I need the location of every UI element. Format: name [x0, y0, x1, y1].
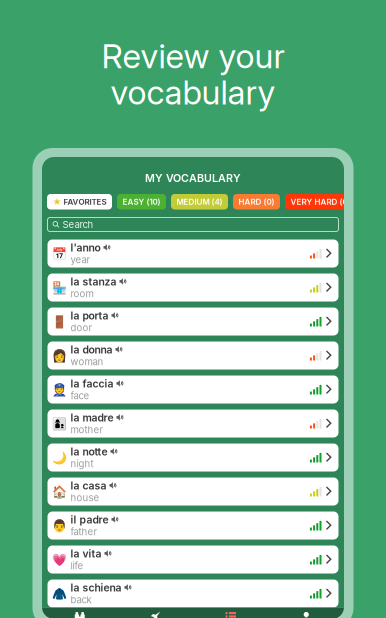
staticText: vocabulary — [110, 72, 275, 113]
button[interactable]: 🧥 — [47, 579, 338, 607]
staticText: 👨 — [52, 518, 67, 533]
staticText: Review your — [101, 36, 284, 76]
staticText: il padre — [70, 513, 108, 526]
staticText: 👩 — [52, 348, 67, 363]
button[interactable]: 🚪 — [47, 307, 338, 335]
staticText: MEDIUM (4) — [176, 197, 222, 207]
button[interactable]: MEDIUM (4) — [171, 194, 228, 209]
staticText: la schiena — [70, 581, 121, 594]
staticText: 🏠 — [52, 484, 67, 499]
staticText: VERY HARD (0) — [290, 197, 350, 207]
staticText: 🧥 — [52, 586, 67, 601]
button[interactable]: 👩 — [47, 341, 338, 369]
button[interactable]: Profile — [268, 611, 344, 618]
staticText: la notte — [70, 445, 107, 458]
staticText: year — [70, 254, 90, 266]
staticText: EASY (10) — [122, 197, 160, 207]
staticText: l'anno — [70, 241, 100, 254]
button[interactable]: Discover — [42, 611, 117, 618]
staticText: la donna — [70, 343, 112, 356]
button[interactable]: 💗 — [47, 545, 338, 573]
button[interactable]: Practice — [117, 611, 193, 618]
staticText: 👮 — [52, 382, 67, 397]
staticText: 📅 — [52, 246, 67, 261]
staticText: room — [70, 288, 93, 300]
staticText: ★ — [52, 196, 61, 207]
staticText: mother — [70, 424, 103, 436]
staticText: woman — [70, 356, 103, 368]
staticText: la vita — [70, 547, 101, 560]
button[interactable]: 🏠 — [47, 477, 338, 505]
staticText: house — [70, 492, 99, 504]
button[interactable]: 👨 — [47, 511, 338, 539]
button[interactable]: HARD (0) — [233, 194, 280, 209]
button[interactable]: 👩‍👦 — [47, 409, 338, 437]
staticText: HARD (0) — [238, 197, 274, 207]
button[interactable]: Search — [47, 217, 338, 231]
button[interactable]: 🌙 — [47, 443, 338, 471]
staticText: la stanza — [70, 275, 116, 288]
staticText: back — [70, 594, 91, 606]
staticText: life — [70, 560, 83, 572]
staticText: father — [70, 526, 97, 538]
button[interactable]: 🏪 — [47, 273, 338, 301]
staticText: 👩‍👦 — [52, 416, 67, 431]
staticText: night — [70, 458, 93, 470]
staticText: MY VOCABULARY — [145, 171, 241, 184]
staticText: 🚪 — [52, 314, 67, 329]
button[interactable]: VERY HARD (0) — [285, 194, 356, 209]
button[interactable]: My Vocabulary — [193, 612, 268, 618]
staticText: la faccia — [70, 377, 113, 390]
staticText: 🌙 — [52, 450, 67, 465]
staticText: face — [70, 390, 89, 402]
staticText: la casa — [70, 479, 106, 492]
staticText: 💗 — [52, 552, 67, 567]
button[interactable]: 👮 — [47, 375, 338, 403]
staticText: Search — [62, 219, 93, 230]
staticText: la porta — [70, 309, 108, 322]
staticText: door — [70, 322, 92, 334]
button[interactable]: EASY (10) — [117, 194, 166, 209]
staticText: 🏪 — [52, 280, 67, 295]
staticText: la madre — [70, 411, 113, 424]
button[interactable]: ★ — [47, 194, 112, 209]
button[interactable]: 📅 — [47, 239, 338, 267]
staticText: FAVORITES — [63, 197, 106, 207]
